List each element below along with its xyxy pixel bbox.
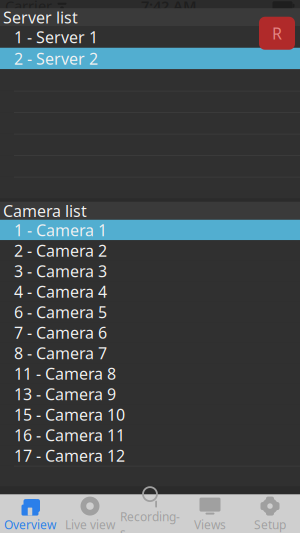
button[interactable]: 2 - Server 2 — [0, 48, 300, 69]
staticText: 17 - Camera 12 — [14, 445, 125, 466]
staticText: 1 - Server 1 — [14, 26, 98, 48]
button[interactable]: 8 - Camera 7 — [0, 343, 300, 363]
staticText: 8 - Camera 7 — [14, 342, 107, 364]
staticText: 7 - Camera 6 — [14, 322, 107, 343]
staticText: 3 - Camera 3 — [14, 260, 107, 282]
staticText: 7:42 AM — [141, 0, 197, 15]
button[interactable]: Overview — [0, 496, 60, 533]
staticText: 1 - Camera 1 — [14, 219, 107, 241]
button[interactable]: 7 - Camera 6 — [0, 322, 300, 343]
button[interactable]: 6 - Camera 5 — [0, 302, 300, 322]
button[interactable]: 2 - Camera 2 — [0, 240, 300, 261]
staticText: 13 - Camera 9 — [14, 383, 116, 405]
button[interactable]: 17 - Camera 12 — [0, 445, 300, 466]
staticText: Overview — [4, 517, 56, 532]
button[interactable]: 15 - Camera 10 — [0, 404, 300, 425]
button[interactable]: Live view — [60, 496, 120, 533]
staticText: 15 - Camera 10 — [14, 404, 125, 425]
staticText: Server list — [3, 7, 78, 28]
staticText: Live view — [65, 517, 115, 532]
staticText: 6 - Camera 5 — [14, 301, 107, 323]
staticText: Setup — [254, 517, 286, 532]
button[interactable]: Recordings — [120, 496, 180, 533]
button[interactable]: 3 - Camera 3 — [0, 261, 300, 281]
staticText: 11 - Camera 8 — [14, 363, 116, 384]
staticText: 16 - Camera 11 — [14, 424, 125, 446]
button[interactable]: Record — [259, 17, 295, 50]
button[interactable]: 16 - Camera 11 — [0, 425, 300, 445]
staticText: 2 - Camera 2 — [14, 240, 107, 261]
button[interactable]: 4 - Camera 4 — [0, 281, 300, 302]
button[interactable]: Setup — [240, 496, 300, 533]
staticText: Carrier — [5, 0, 52, 15]
button[interactable]: 11 - Camera 8 — [0, 363, 300, 384]
button[interactable]: 1 - Camera 1 — [0, 220, 300, 240]
staticText: R — [272, 23, 282, 44]
button[interactable]: 1 - Server 1 — [0, 26, 300, 48]
staticText: Views — [194, 517, 226, 532]
staticText: 4 - Camera 4 — [14, 281, 107, 302]
staticText: Camera list — [3, 200, 87, 221]
button[interactable]: Views — [180, 496, 240, 533]
staticText: 2 - Server 2 — [14, 48, 98, 69]
staticText: Recordings — [120, 509, 180, 533]
button[interactable]: 13 - Camera 9 — [0, 384, 300, 404]
